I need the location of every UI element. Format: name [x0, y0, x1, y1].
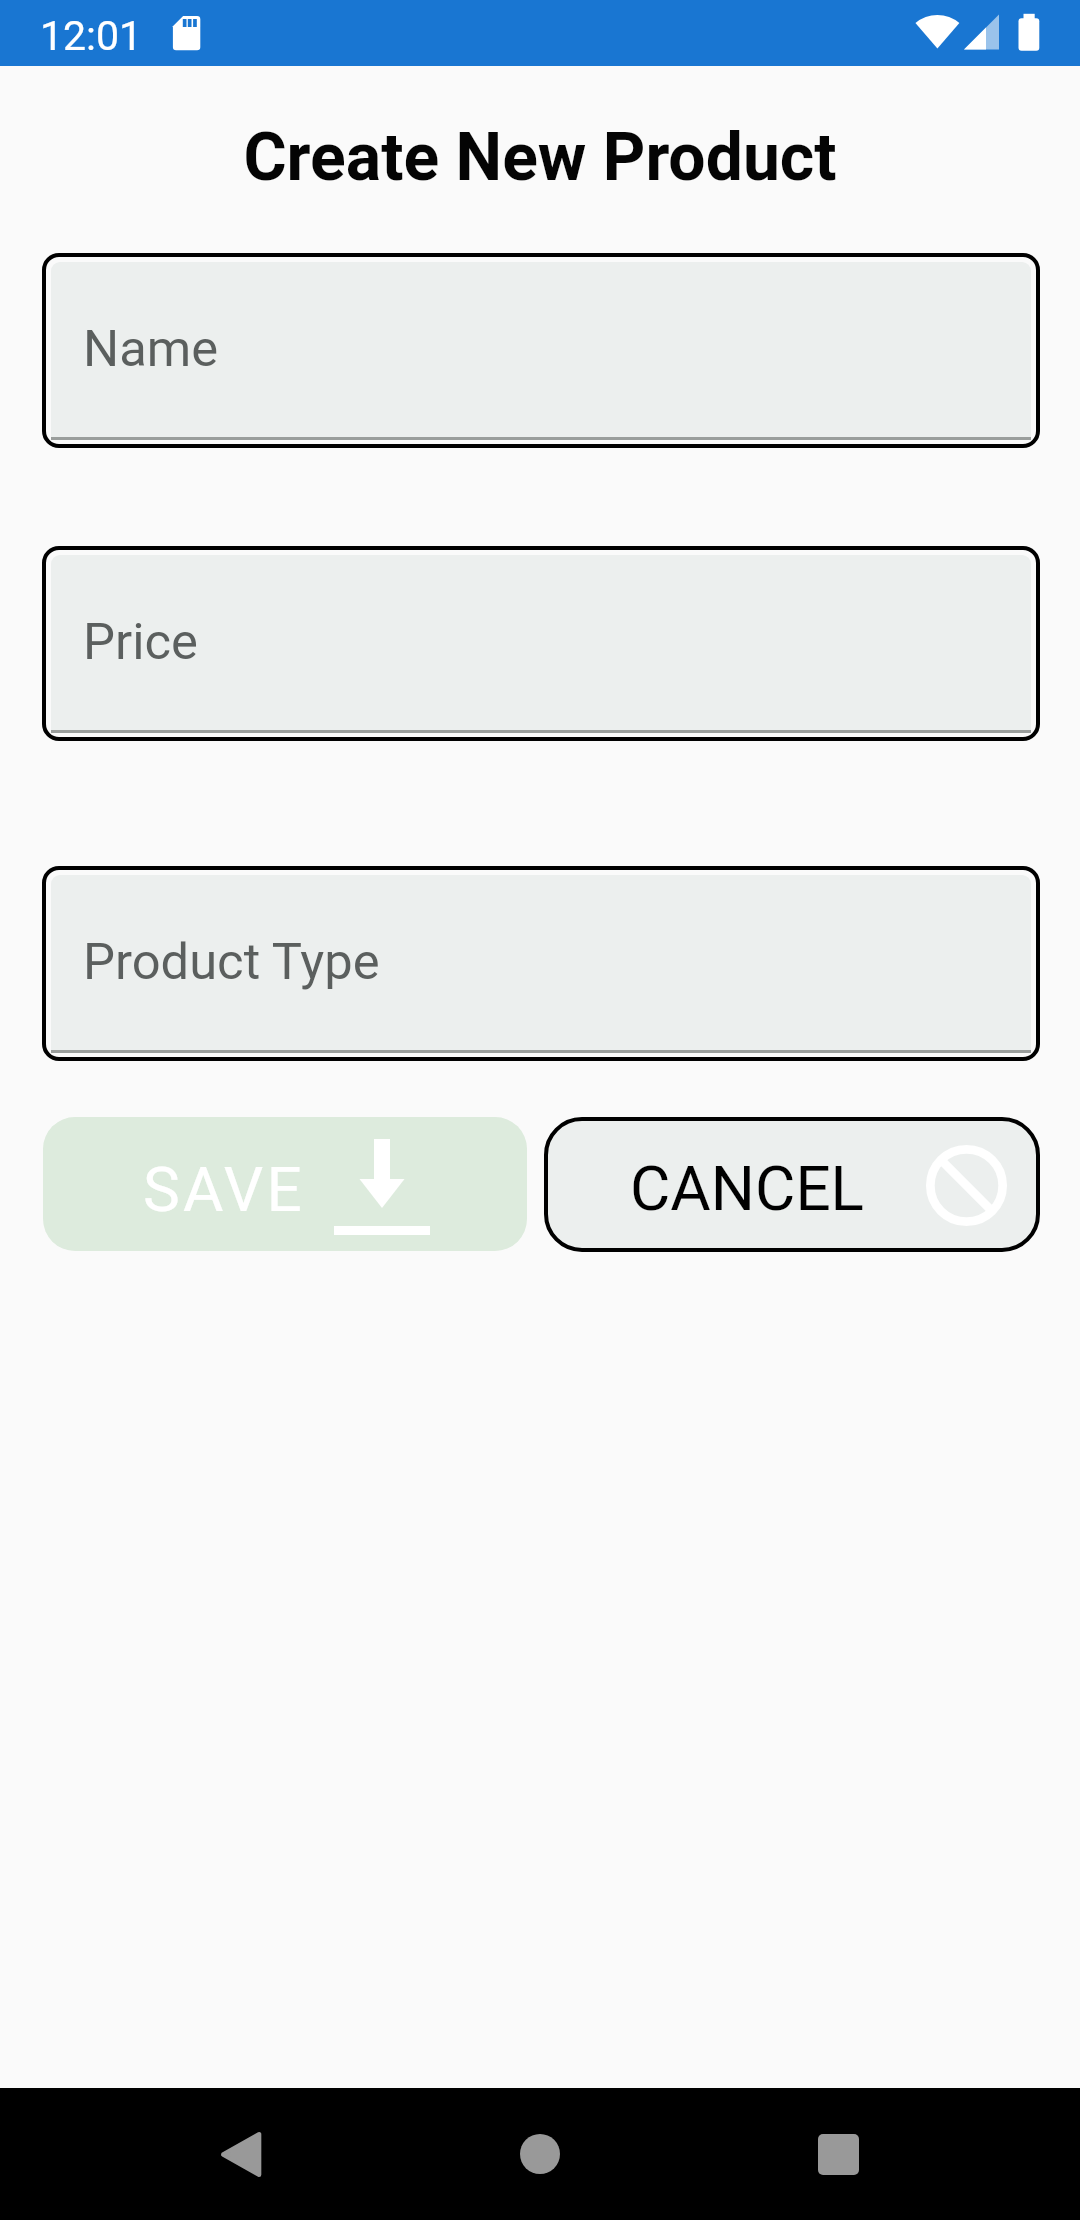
staticText: CANCEL	[630, 1152, 865, 1225]
button[interactable]: Name	[51, 262, 1031, 440]
button[interactable]: Recent apps	[778, 2088, 898, 2220]
staticText: Create New Product	[0, 119, 1080, 196]
button[interactable]: SAVE	[43, 1117, 527, 1251]
staticText: Product Type	[83, 932, 380, 991]
button[interactable]: Price	[51, 555, 1031, 733]
button[interactable]: CANCEL	[544, 1117, 1040, 1252]
staticText: SAVE	[143, 1153, 305, 1226]
button[interactable]: Product Type	[51, 875, 1031, 1053]
button[interactable]: Home	[480, 2088, 600, 2220]
staticText: Price	[83, 612, 198, 671]
staticText: Name	[83, 319, 219, 378]
button[interactable]: Back	[180, 2088, 300, 2220]
staticText: 12:01	[40, 12, 143, 60]
